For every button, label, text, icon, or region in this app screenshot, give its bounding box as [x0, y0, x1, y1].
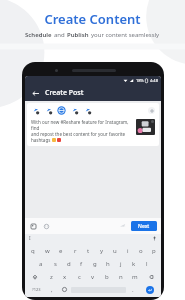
staticText: ?123	[32, 287, 41, 292]
button[interactable]: d	[62, 258, 75, 269]
staticText: w	[45, 247, 50, 255]
staticText: k	[132, 260, 136, 268]
button[interactable]: e	[54, 245, 68, 256]
staticText: Next	[138, 223, 150, 230]
button[interactable]: .	[127, 284, 139, 295]
staticText: u	[113, 247, 117, 255]
staticText: With our new #Reshare feature for Instag…	[31, 119, 133, 131]
staticText: j	[120, 260, 122, 268]
button[interactable]: Backspace	[142, 271, 160, 282]
button[interactable]: Social account	[44, 106, 53, 115]
staticText: and repost the best content for your fav…	[31, 131, 126, 137]
staticText: Schedule	[25, 31, 54, 39]
staticText: ,	[51, 286, 53, 294]
staticText: hashtags	[31, 137, 52, 143]
button[interactable]: Next	[131, 221, 157, 231]
button[interactable]: Social account	[57, 106, 66, 115]
button[interactable]: t	[82, 245, 95, 256]
button[interactable]: w	[40, 245, 54, 256]
staticText: e	[59, 247, 63, 255]
button[interactable]: Enter	[139, 284, 160, 295]
button[interactable]: z	[44, 271, 58, 282]
staticText: Create Post	[45, 88, 84, 98]
button[interactable]: Social account	[70, 106, 79, 115]
staticText: y	[100, 247, 104, 255]
button[interactable]: s	[48, 258, 62, 269]
button[interactable]: n	[114, 271, 128, 282]
button[interactable]: Emoji	[58, 284, 70, 295]
button[interactable]: p	[147, 245, 160, 256]
button[interactable]: ,	[46, 284, 58, 295]
staticText: .	[132, 286, 134, 294]
staticText: v	[91, 273, 95, 281]
staticText: a	[39, 260, 43, 268]
button[interactable]: b	[100, 271, 114, 282]
button[interactable]: g	[88, 258, 101, 269]
button[interactable]: a	[34, 258, 48, 269]
staticText: Create Content	[44, 10, 141, 28]
staticText: s	[54, 260, 57, 268]
button[interactable]: Back	[29, 87, 41, 99]
button[interactable]: o	[134, 245, 147, 256]
button[interactable]: ?123	[26, 284, 46, 295]
button[interactable]: r	[68, 245, 82, 256]
button[interactable]: k	[127, 258, 140, 269]
staticText: z	[50, 273, 53, 281]
button[interactable]: Attached image	[136, 119, 155, 135]
staticText: m	[132, 273, 138, 281]
staticText: and	[54, 31, 67, 39]
staticText: i	[127, 247, 129, 255]
button[interactable]: Add account	[148, 107, 155, 114]
staticText: I	[29, 235, 31, 242]
button[interactable]: Shift	[26, 271, 44, 282]
button[interactable]: v	[86, 271, 100, 282]
button[interactable]: x	[58, 271, 72, 282]
staticText: g	[93, 260, 97, 268]
button[interactable]: i	[121, 245, 134, 256]
button[interactable]: l	[140, 258, 153, 269]
button[interactable]: Add media	[29, 222, 37, 230]
staticText: your content seamlessly	[91, 31, 160, 39]
button[interactable]: y	[95, 245, 108, 256]
staticText: c	[78, 273, 81, 281]
button[interactable]: j	[114, 258, 127, 269]
staticText: d	[67, 260, 71, 268]
button[interactable]: f	[75, 258, 88, 269]
button[interactable]: h	[101, 258, 114, 269]
staticText: b	[105, 273, 109, 281]
button[interactable]: Social account	[27, 103, 159, 146]
staticText: Publish	[67, 31, 91, 39]
staticText: n	[119, 273, 123, 281]
staticText: q	[31, 247, 35, 255]
staticText: x	[63, 273, 67, 281]
staticText: o	[139, 247, 143, 255]
staticText: p	[152, 247, 156, 255]
button[interactable]: Social account	[83, 106, 92, 115]
staticText: f	[80, 260, 83, 268]
staticText: 4:48	[150, 78, 158, 83]
button[interactable]: Emoji	[42, 222, 50, 230]
staticText: t	[87, 247, 90, 255]
staticText: l	[146, 260, 148, 268]
button[interactable]: Social account	[31, 106, 40, 115]
button[interactable]: m	[128, 271, 142, 282]
staticText: 18%	[136, 78, 144, 83]
button[interactable]: u	[108, 245, 121, 256]
staticText: h	[106, 260, 110, 268]
button[interactable]: q	[26, 245, 40, 256]
staticText: r	[74, 247, 77, 255]
button[interactable]: c	[72, 271, 86, 282]
